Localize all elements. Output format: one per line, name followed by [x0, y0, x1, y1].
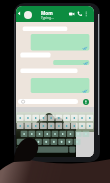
- button[interactable]: More options: [84, 11, 89, 16]
- button[interactable]: Record voice message: [83, 99, 89, 105]
- button[interactable]: Mom: [41, 10, 54, 20]
- button[interactable]: Video call: [69, 12, 75, 18]
- button[interactable]: Back: [17, 11, 22, 16]
- staticText: Typing...: [41, 16, 54, 20]
- button[interactable]: Voice call: [77, 11, 83, 17]
- button[interactable]: Contact photo: [24, 11, 32, 19]
- staticText: Mom: [41, 10, 53, 16]
- button[interactable]: Type a message: [18, 99, 78, 104]
